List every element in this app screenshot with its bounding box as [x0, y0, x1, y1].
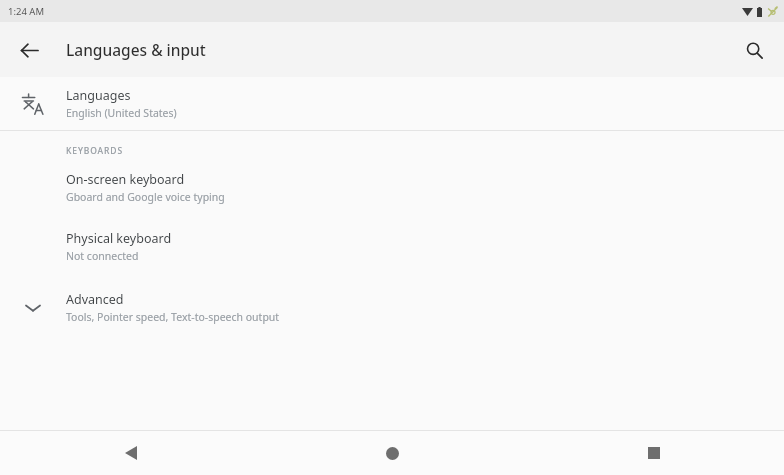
button[interactable]: Languages [0, 77, 784, 130]
button[interactable]: Navigate up [12, 33, 46, 67]
staticText: Languages [66, 87, 131, 104]
button[interactable]: On-screen keyboard [0, 157, 784, 206]
staticText: Languages & input [66, 39, 206, 60]
button[interactable]: Advanced [0, 265, 784, 324]
staticText: Tools, Pointer speed, Text-to-speech out… [66, 310, 280, 324]
button[interactable]: Recent apps [523, 431, 784, 475]
staticText: KEYBOARDS [66, 145, 124, 157]
button[interactable]: Back [0, 431, 262, 475]
staticText: On-screen keyboard [66, 171, 185, 188]
button[interactable]: Physical keyboard [0, 206, 784, 265]
button[interactable]: Home [262, 431, 523, 475]
staticText: Advanced [66, 291, 124, 308]
staticText: Physical keyboard [66, 230, 172, 247]
staticText: 1:24 AM [8, 5, 45, 18]
button[interactable]: Search [736, 32, 772, 68]
staticText: English (United States) [66, 106, 177, 120]
staticText: Gboard and Google voice typing [66, 190, 225, 204]
staticText: Not connected [66, 249, 139, 263]
